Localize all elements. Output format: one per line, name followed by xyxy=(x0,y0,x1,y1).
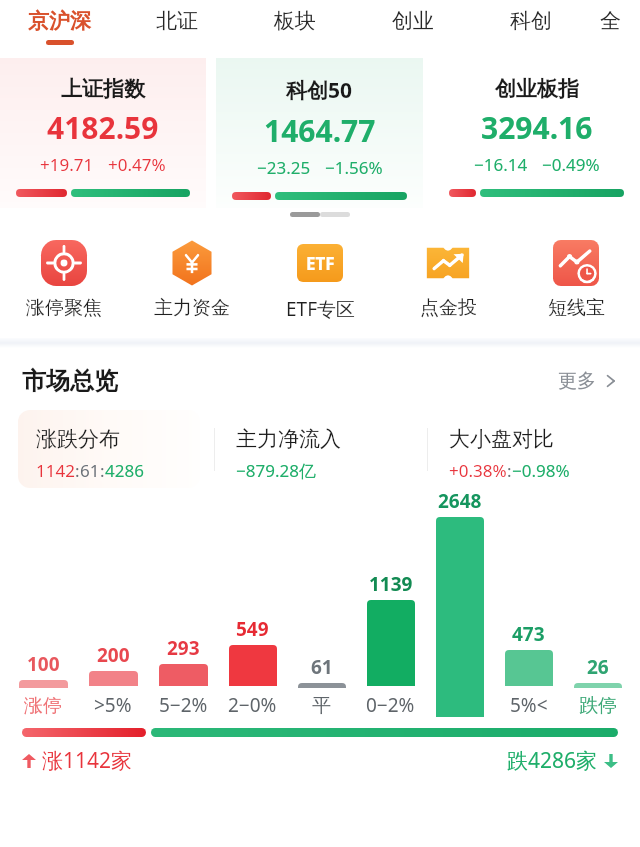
staticText: −16.14 xyxy=(474,153,528,176)
staticText: 主力净流入 xyxy=(236,426,341,452)
staticText: 涨停 xyxy=(24,694,62,718)
staticText: 2648 xyxy=(438,488,482,514)
staticText: 大小盘对比 xyxy=(449,426,554,452)
staticText: 1464.77 xyxy=(264,110,376,151)
button[interactable]: 涨停聚焦 xyxy=(0,240,128,320)
staticText: 科创 xyxy=(510,8,552,34)
button[interactable]: 点金投 xyxy=(384,240,512,320)
button[interactable]: 创业板指 xyxy=(433,58,640,208)
staticText: +0.38% xyxy=(449,459,507,482)
staticText: 293 xyxy=(167,635,200,661)
staticText: 短线宝 xyxy=(548,296,605,320)
staticText: 5−2% xyxy=(159,692,208,718)
staticText: ETF专区 xyxy=(286,296,355,322)
button[interactable]: 293 xyxy=(148,635,218,718)
button[interactable]: 1139 xyxy=(356,571,425,718)
staticText: 4286 xyxy=(105,459,144,482)
staticText: −23.25 xyxy=(257,156,311,179)
button[interactable]: 全 xyxy=(590,0,630,58)
other: 涨停聚焦 xyxy=(41,240,87,286)
staticText: 26 xyxy=(587,654,609,680)
staticText: 更多 xyxy=(558,369,596,393)
staticText: 科创50 xyxy=(286,76,353,105)
staticText: 61 xyxy=(311,654,333,680)
button[interactable]: 549 xyxy=(218,616,287,718)
other: 主力资金 xyxy=(169,240,215,286)
staticText: : xyxy=(75,459,80,482)
staticText: 上证指数 xyxy=(61,76,145,102)
staticText: 涨1142家 xyxy=(42,746,133,775)
button[interactable]: 涨跌分布 xyxy=(36,426,214,488)
button[interactable]: 61 xyxy=(287,654,356,718)
staticText: 100 xyxy=(27,651,60,677)
staticText: +0.47% xyxy=(108,153,166,176)
staticText: 1142 xyxy=(36,459,75,482)
other: 点金投 xyxy=(425,240,471,286)
staticText: −0.98% xyxy=(512,459,570,482)
button[interactable]: 北证 xyxy=(118,0,236,58)
staticText: +19.71 xyxy=(40,153,94,176)
other: ETF专区 xyxy=(297,244,343,282)
button[interactable]: 创业 xyxy=(354,0,472,58)
button[interactable]: 473 xyxy=(494,621,563,718)
staticText: : xyxy=(100,459,105,482)
button[interactable]: 科创50 xyxy=(216,58,423,208)
staticText: 创业 xyxy=(392,8,434,34)
staticText: −0.49% xyxy=(542,153,600,176)
staticText: −1.56% xyxy=(325,156,383,179)
button[interactable]: 科创 xyxy=(472,0,590,58)
staticText: 4182.59 xyxy=(47,107,159,148)
staticText: 全 xyxy=(600,8,621,34)
staticText: ETF xyxy=(306,252,335,275)
staticText: 0−2% xyxy=(366,692,415,718)
staticText: 549 xyxy=(236,616,269,642)
staticText: 473 xyxy=(512,621,545,647)
staticText: 京沪深 xyxy=(28,8,91,34)
staticText: : xyxy=(507,459,512,482)
staticText: 涨停聚焦 xyxy=(26,296,102,320)
staticText: 涨跌分布 xyxy=(36,426,120,452)
staticText: 2−0% xyxy=(228,692,277,718)
staticText: 市场总览 xyxy=(22,366,118,396)
button[interactable]: 2648 xyxy=(425,488,494,718)
button[interactable]: 26 xyxy=(563,654,632,718)
button[interactable]: 板块 xyxy=(236,0,354,58)
staticText: 跌4286家 xyxy=(507,746,598,775)
staticText: 主力资金 xyxy=(154,296,230,320)
staticText: 创业板指 xyxy=(495,76,579,102)
staticText: 跌停 xyxy=(579,694,617,718)
staticText: 点金投 xyxy=(420,296,477,320)
button[interactable]: ETF专区 xyxy=(256,240,384,322)
staticText: 3294.16 xyxy=(481,107,593,148)
button[interactable]: 大小盘对比 xyxy=(449,426,640,488)
other: 短线宝 xyxy=(553,240,599,286)
staticText: 200 xyxy=(97,642,130,668)
button[interactable]: 京沪深 xyxy=(0,0,118,58)
staticText: 平 xyxy=(312,694,331,718)
staticText: 板块 xyxy=(274,8,316,34)
button[interactable]: 主力净流入 xyxy=(236,426,427,488)
button[interactable]: 100 xyxy=(8,651,78,718)
button[interactable]: 更多 xyxy=(558,369,618,393)
staticText: >5% xyxy=(94,692,132,718)
staticText: 5%< xyxy=(510,692,548,718)
button[interactable]: 主力资金 xyxy=(128,240,256,320)
button[interactable]: 短线宝 xyxy=(512,240,640,320)
button[interactable]: 上证指数 xyxy=(0,58,206,208)
staticText: 北证 xyxy=(156,8,198,34)
button[interactable]: 200 xyxy=(78,642,148,718)
staticText: 1139 xyxy=(369,571,413,597)
staticText: −879.28亿 xyxy=(236,459,316,482)
staticText: 61 xyxy=(80,459,100,482)
